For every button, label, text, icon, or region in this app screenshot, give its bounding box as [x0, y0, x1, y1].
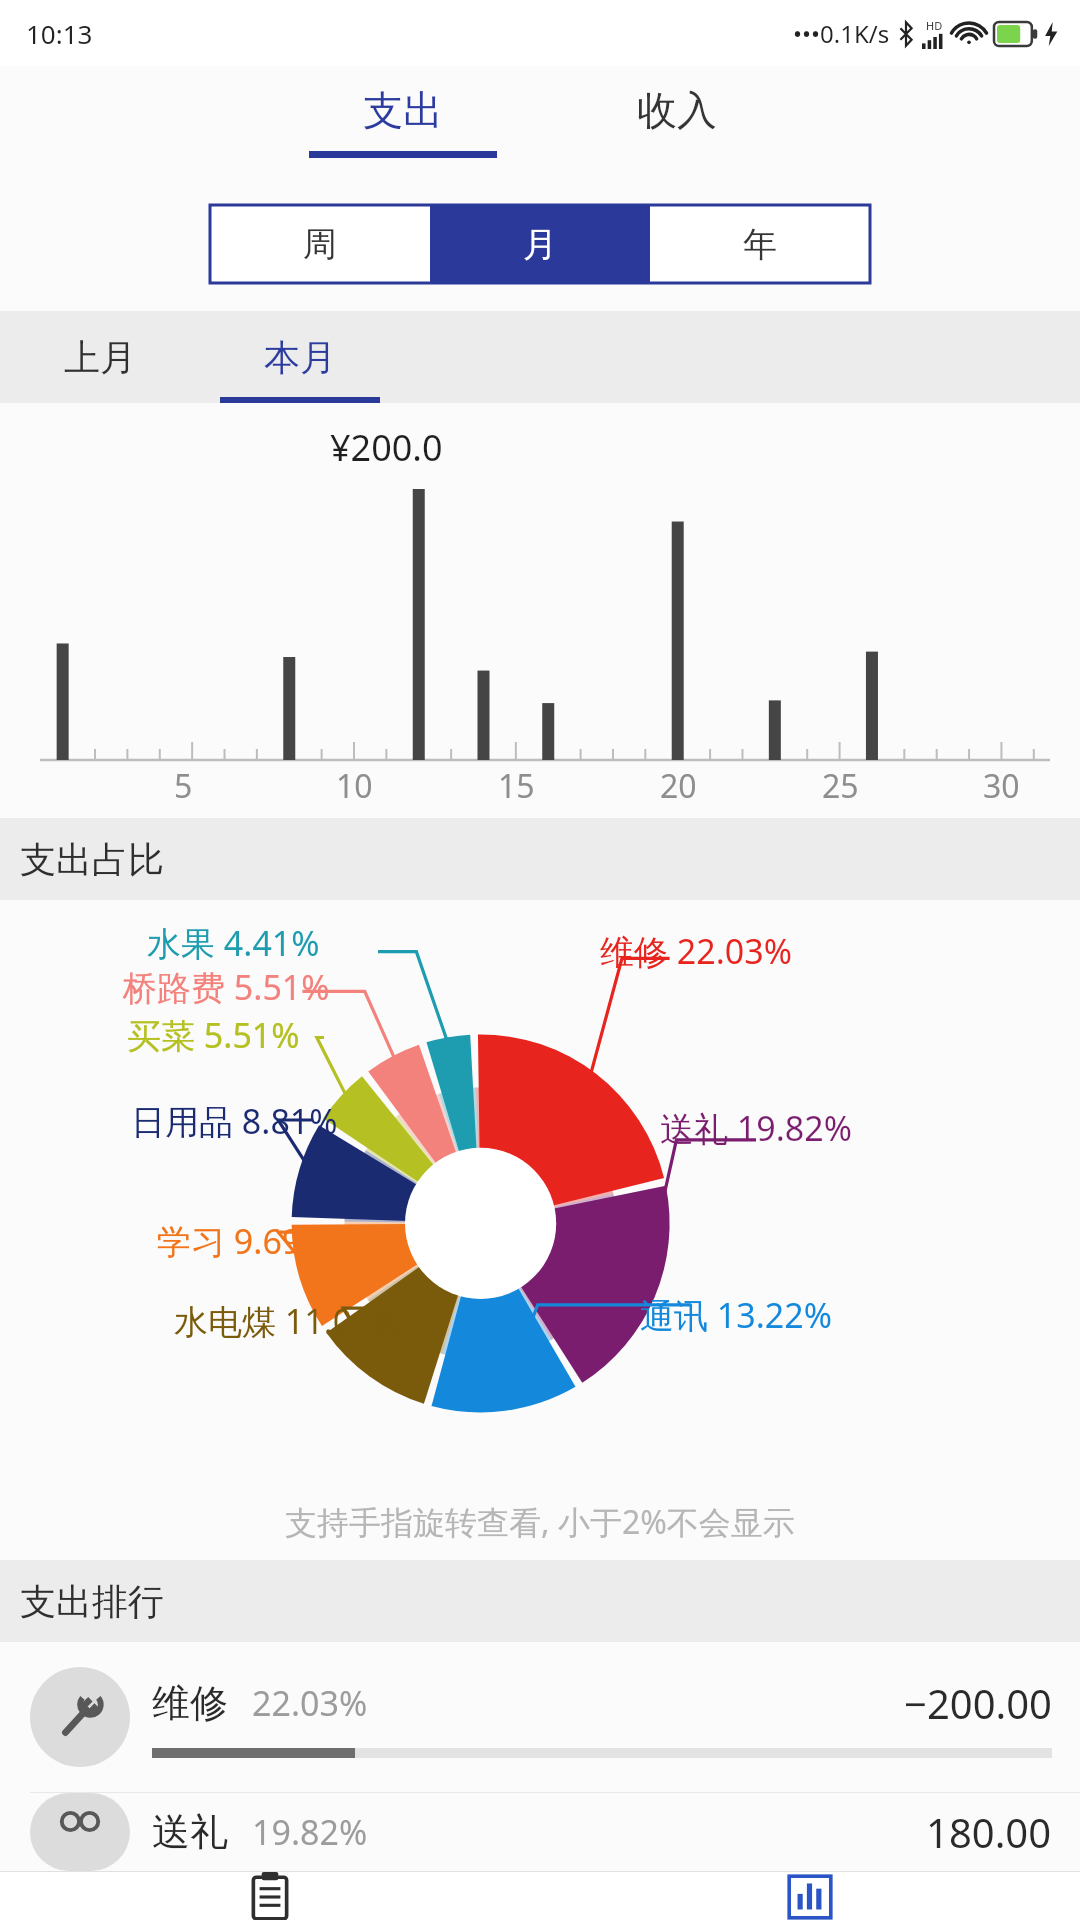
staticText: 月 — [523, 223, 557, 266]
staticText: 支出占比 — [20, 837, 164, 882]
staticText: 维修 22.03% — [600, 928, 792, 974]
staticText: 支持手指旋转查看, 小于2%不会显示 — [285, 1500, 795, 1544]
staticText: 收入 — [637, 85, 717, 135]
staticText: 19.82% — [252, 1809, 368, 1855]
staticText: 买菜 5.51% — [127, 1012, 300, 1058]
staticText: 10 — [336, 764, 373, 808]
staticText: 本月 — [264, 335, 336, 380]
button[interactable]: 周 — [210, 205, 430, 283]
staticText: 25 — [822, 764, 859, 808]
staticText: •••0.1K/s — [793, 17, 890, 50]
button[interactable]: 本月 — [200, 311, 400, 403]
other: 送礼 — [56, 1808, 104, 1856]
staticText: 5 — [174, 764, 193, 808]
button[interactable]: 上月 — [0, 311, 200, 403]
staticText: 180.00 — [926, 1805, 1052, 1859]
staticText: 22.03% — [252, 1680, 368, 1726]
button[interactable]: 年 — [650, 205, 870, 283]
staticText: 送礼 — [152, 1808, 228, 1856]
staticText: 年 — [743, 223, 777, 266]
staticText: 维修 — [152, 1679, 228, 1727]
staticText: 10:13 — [26, 16, 93, 51]
button[interactable]: 维修 — [0, 1642, 1080, 1792]
button[interactable]: 送礼 — [0, 1793, 1080, 1871]
staticText: 上月 — [64, 335, 136, 380]
staticText: 学习 9.69% — [157, 1218, 330, 1264]
staticText: 送礼 19.82% — [660, 1105, 852, 1151]
staticText: 支出排行 — [20, 1579, 164, 1624]
staticText: −200.00 — [904, 1676, 1052, 1730]
staticText: 15 — [498, 764, 535, 808]
staticText: 水电煤 11.01% — [174, 1298, 400, 1344]
staticText: 桥路费 5.51% — [123, 964, 330, 1010]
staticText: 支出 — [363, 85, 443, 135]
button[interactable]: 收入 — [559, 85, 795, 158]
staticText: 20 — [660, 764, 697, 808]
staticText: 水果 4.41% — [147, 920, 320, 966]
button[interactable]: 统计 — [540, 1871, 1080, 1920]
button[interactable]: 月 — [430, 205, 650, 283]
staticText: 通讯 13.22% — [640, 1292, 832, 1338]
staticText: HD — [926, 18, 943, 33]
button[interactable]: 账单 — [0, 1871, 540, 1920]
button[interactable]: 支出 — [285, 85, 521, 158]
staticText: 周 — [303, 223, 337, 266]
staticText: ¥200.0 — [330, 423, 443, 472]
staticText: 日用品 8.81% — [131, 1098, 338, 1144]
staticText: 30 — [983, 764, 1020, 808]
other: 维修 — [54, 1691, 106, 1743]
